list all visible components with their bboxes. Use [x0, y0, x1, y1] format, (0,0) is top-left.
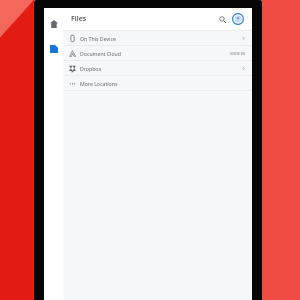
- button[interactable]: Document Cloud: [63, 46, 252, 60]
- staticText: Dropbox: [80, 65, 102, 72]
- button[interactable]: On This Device: [63, 31, 252, 45]
- button[interactable]: Dropbox: [63, 61, 252, 75]
- button[interactable]: Files: [44, 39, 63, 58]
- staticText: SIGN IN: [230, 51, 246, 56]
- button[interactable]: More Locations: [63, 76, 252, 90]
- staticText: On This Device: [80, 35, 116, 42]
- button[interactable]: Account: [231, 12, 245, 26]
- staticText: Document Cloud: [80, 50, 121, 57]
- button[interactable]: Home: [44, 14, 63, 33]
- staticText: Files: [71, 14, 87, 24]
- staticText: More Locations: [80, 80, 118, 87]
- button[interactable]: Search: [215, 12, 229, 26]
